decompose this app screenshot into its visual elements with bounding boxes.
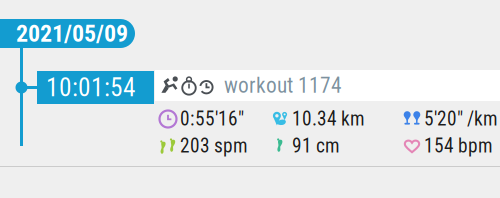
staticText: 0:55'16" bbox=[180, 108, 244, 130]
button[interactable]: 10:01:54 bbox=[37, 71, 154, 104]
staticText: workout 1174 bbox=[224, 73, 342, 98]
button[interactable]: workout 1174 bbox=[155, 70, 500, 101]
staticText: 10.34 km bbox=[292, 108, 365, 130]
staticText: 2021/05/09 bbox=[16, 19, 128, 47]
staticText: 154 bpm bbox=[424, 135, 493, 157]
staticText: 5'20" /km bbox=[424, 108, 498, 130]
staticText: 10:01:54 bbox=[46, 73, 136, 102]
staticText: 203 spm bbox=[180, 135, 248, 157]
staticText: 91 cm bbox=[292, 135, 340, 157]
button[interactable]: 2021/05/09 bbox=[0, 19, 135, 48]
